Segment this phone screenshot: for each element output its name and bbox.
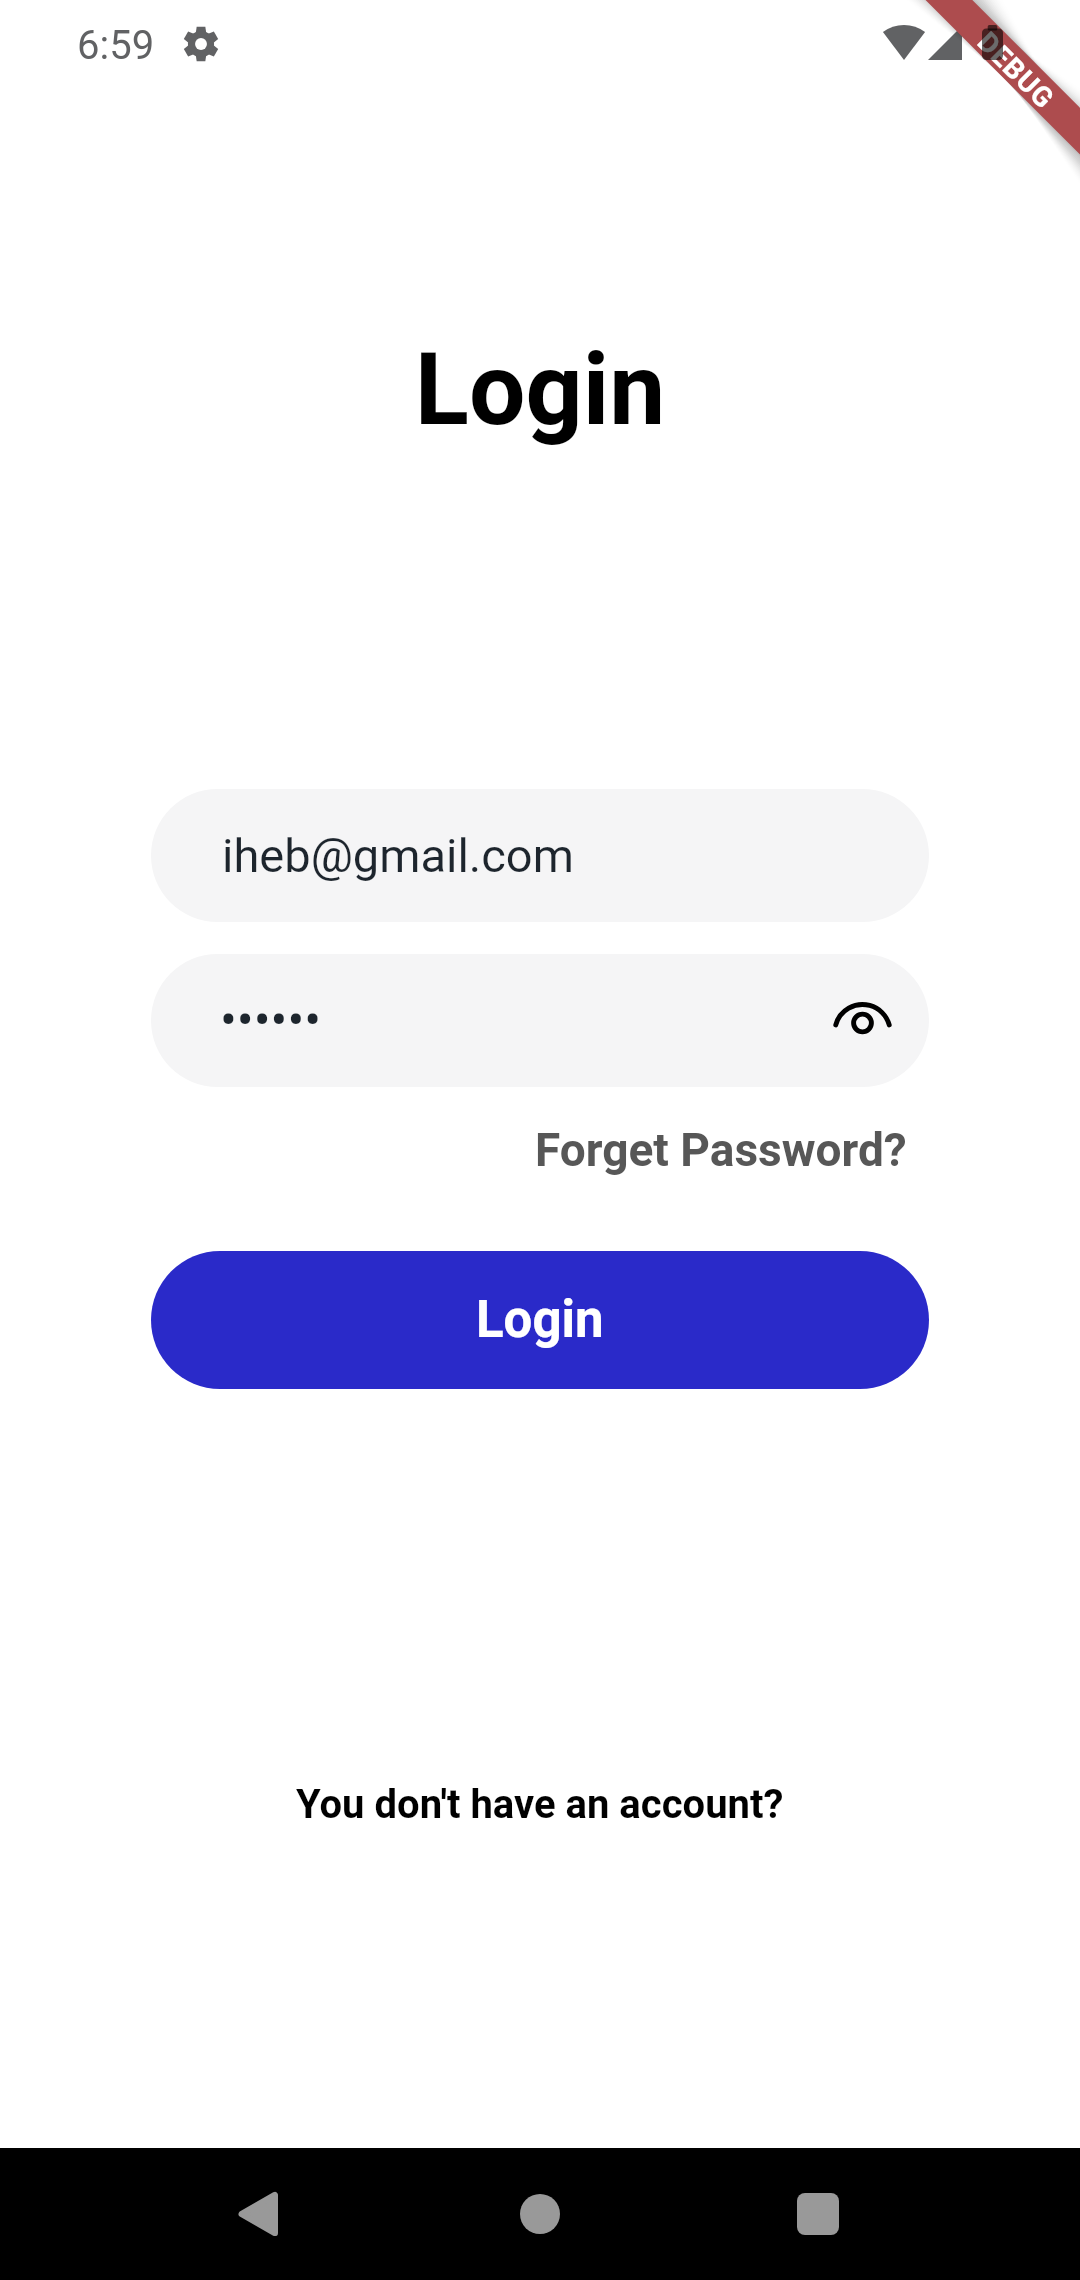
button[interactable]: Back	[167, 2148, 347, 2280]
staticText: ••••••	[220, 991, 322, 1050]
button[interactable]: ••••••	[151, 954, 929, 1087]
button[interactable]: Forget Password?	[517, 1107, 925, 1193]
button[interactable]: iheb@gmail.com	[151, 789, 929, 922]
button[interactable]: Login	[151, 1251, 929, 1389]
button[interactable]: Show password	[817, 977, 907, 1059]
staticText: iheb@gmail.com	[222, 828, 574, 883]
staticText: Login	[476, 1290, 604, 1350]
staticText: 6:59	[77, 22, 155, 69]
staticText: DEBUG	[971, 25, 1061, 115]
button[interactable]: Home	[450, 2148, 630, 2280]
button[interactable]: You don't have an account?	[272, 1763, 808, 1846]
staticText: You don't have an account?	[296, 1781, 784, 1828]
button[interactable]: Recents	[728, 2148, 908, 2280]
staticText: Forget Password?	[535, 1123, 907, 1177]
staticText: Login	[0, 331, 1080, 448]
